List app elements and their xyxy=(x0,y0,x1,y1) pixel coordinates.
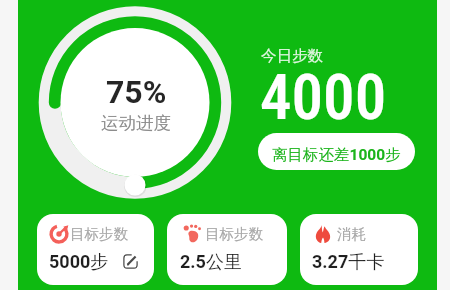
button[interactable]: Edit step goal xyxy=(123,254,138,269)
staticText: 5000步 xyxy=(49,251,109,274)
staticText: 离目标还差1000步 xyxy=(272,145,401,165)
button[interactable]: 目标步数 xyxy=(37,214,154,285)
staticText: 3.27千卡 xyxy=(312,251,385,274)
button[interactable]: 离目标还差1000步 xyxy=(258,133,415,170)
button[interactable]: 消耗 xyxy=(300,214,418,285)
staticText: 75% xyxy=(106,73,167,111)
staticText: 运动进度 xyxy=(101,112,171,134)
staticText: 目标步数 xyxy=(70,225,128,243)
button[interactable]: 目标步数 xyxy=(167,214,287,285)
staticText: 消耗 xyxy=(337,225,366,243)
staticText: 2.5公里 xyxy=(180,251,242,274)
staticText: 目标步数 xyxy=(205,225,263,243)
staticText: 4000 xyxy=(260,61,387,135)
staticText: 今日步数 xyxy=(261,46,323,66)
